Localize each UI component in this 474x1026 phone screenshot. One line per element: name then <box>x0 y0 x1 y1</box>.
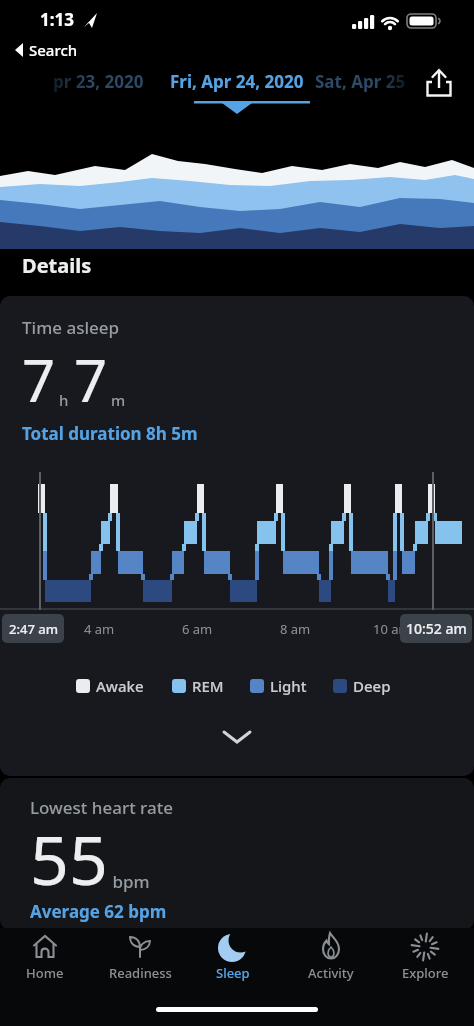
button[interactable]: Readiness <box>100 930 180 986</box>
staticText: Details <box>22 252 92 279</box>
staticText: 6 am <box>182 620 213 638</box>
staticText: 7 <box>74 340 108 419</box>
button[interactable]: Home <box>5 930 85 986</box>
button[interactable] <box>212 722 262 758</box>
staticText: Lowest heart rate <box>30 796 173 819</box>
staticText: 8 am <box>280 620 311 638</box>
staticText: 7 <box>22 340 56 419</box>
staticText: Search <box>29 40 78 60</box>
staticText: Readiness <box>109 964 172 982</box>
staticText: 1:13 <box>40 8 74 31</box>
button[interactable]: Sleep <box>193 930 273 986</box>
button[interactable]: Total duration 8h 5m <box>22 422 198 445</box>
button[interactable]: Fri, Apr 24, 2020 <box>170 70 304 93</box>
button[interactable]: Explore <box>385 930 465 986</box>
staticText: 4 am <box>84 620 115 638</box>
staticText: Light <box>270 676 307 696</box>
button[interactable]: pr 23, 2020 <box>53 70 144 93</box>
button[interactable]: Search <box>12 40 78 60</box>
staticText: 10:52 am <box>406 619 467 638</box>
staticText: Deep <box>353 676 391 696</box>
staticText: m <box>111 390 126 410</box>
staticText: Home <box>26 964 64 982</box>
staticText: 2:47 am <box>9 620 58 638</box>
button[interactable] <box>420 60 464 104</box>
staticText: 10 am <box>373 620 411 638</box>
button[interactable]: 10:52 am <box>400 614 472 643</box>
button[interactable]: Sat, Apr 25 <box>315 70 406 93</box>
button[interactable]: Activity <box>291 930 371 986</box>
staticText: Awake <box>96 676 144 696</box>
staticText: bpm <box>108 870 150 893</box>
button[interactable]: Average 62 bpm <box>30 900 167 923</box>
staticText: h <box>59 390 69 410</box>
staticText: Time asleep <box>22 316 120 339</box>
staticText: Sleep <box>216 964 250 982</box>
staticText: Activity <box>308 964 354 982</box>
button[interactable]: 2:47 am <box>2 614 64 643</box>
staticText: Explore <box>402 964 449 982</box>
staticText: 55 <box>30 812 108 905</box>
staticText: REM <box>192 676 224 696</box>
